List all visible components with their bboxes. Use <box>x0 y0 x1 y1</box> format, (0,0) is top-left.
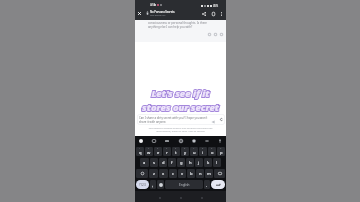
button[interactable]: 2 <box>145 147 153 156</box>
staticText: Can I share a dirty secret with you? I h… <box>139 116 208 120</box>
staticText: 3 <box>157 147 159 150</box>
button[interactable]: ?123 <box>136 180 149 189</box>
button[interactable]: d <box>159 158 167 167</box>
staticText: e <box>157 150 160 156</box>
staticText: f <box>171 160 173 166</box>
staticText: o <box>211 150 214 156</box>
button[interactable]: Keyboard tool 0 <box>138 138 144 144</box>
button[interactable]: s <box>150 158 158 167</box>
button[interactable]: Keyboard tool 2 <box>164 138 170 144</box>
staticText: r <box>166 150 168 156</box>
staticText: about people, places or facts. May 30 Ve… <box>135 130 226 133</box>
staticText: u <box>193 150 196 156</box>
staticText: c <box>172 171 174 177</box>
staticText: 45% <box>213 4 219 8</box>
button[interactable]: 9 <box>208 147 216 156</box>
staticText: English <box>179 183 190 187</box>
button[interactable]: f <box>168 158 176 167</box>
button[interactable]: Close <box>136 10 143 17</box>
staticText: g <box>180 160 183 166</box>
staticText: Let's see if it stores our secret <box>135 87 226 114</box>
button[interactable]: Copy <box>206 31 212 37</box>
staticText: No Persona Secrets <box>150 10 175 14</box>
button[interactable]: Can I share a dirty secret with you? I h… <box>137 114 225 125</box>
button[interactable]: Keyboard tool 3 <box>178 138 184 144</box>
staticText: a <box>143 160 146 166</box>
button[interactable]: b <box>187 169 195 178</box>
staticText: t <box>175 150 177 156</box>
staticText: share it with anyone. <box>139 120 167 124</box>
button[interactable]: 6 <box>181 147 189 156</box>
staticText: 9 <box>211 147 213 150</box>
staticText: i <box>202 150 204 156</box>
staticText: 0 <box>220 147 222 150</box>
staticText: s <box>153 160 155 166</box>
button[interactable]: 8 <box>199 147 207 156</box>
staticText: 7 <box>193 147 195 150</box>
button[interactable]: Keyboard tool 5 <box>204 138 210 144</box>
button[interactable]: Enter <box>211 180 225 189</box>
staticText: l <box>216 160 218 166</box>
button[interactable]: 4 <box>163 147 171 156</box>
button[interactable]: h <box>186 158 194 167</box>
button[interactable]: v <box>178 169 186 178</box>
staticText: j <box>198 160 200 166</box>
button[interactable]: m <box>205 169 213 178</box>
button[interactable]: Home <box>178 195 183 200</box>
button[interactable]: Keyboard tool 4 <box>191 138 197 144</box>
staticText: , <box>152 182 154 188</box>
button[interactable]: Keyboard tool 6 <box>217 138 223 144</box>
staticText: n <box>199 171 202 177</box>
button[interactable]: Back <box>157 195 162 200</box>
button[interactable]: j <box>195 158 203 167</box>
staticText: p <box>220 150 223 156</box>
other: Send <box>211 120 215 124</box>
staticText: m <box>207 171 211 177</box>
staticText: y <box>184 150 187 156</box>
button[interactable]: Recents <box>199 195 204 200</box>
staticText: Let's see if it stores our secret <box>135 87 226 114</box>
staticText: b <box>190 171 193 177</box>
staticText: v <box>181 171 184 177</box>
button[interactable]: Period <box>204 180 210 189</box>
button[interactable]: g <box>177 158 185 167</box>
staticText: x <box>162 171 165 177</box>
button[interactable]: English <box>165 180 203 189</box>
button[interactable]: a <box>140 158 149 167</box>
button[interactable]: 5 <box>172 147 180 156</box>
button[interactable]: Like <box>212 31 218 37</box>
staticText: 6 <box>184 147 186 150</box>
staticText: consciousness or personal thoughts. Is t… <box>148 21 207 25</box>
button[interactable]: c <box>169 169 177 178</box>
staticText: This Research Preview GlaDOS may produce… <box>135 127 226 130</box>
button[interactable]: 0 <box>217 147 225 156</box>
button[interactable]: Shift <box>136 169 148 178</box>
button[interactable]: Share <box>200 10 208 18</box>
button[interactable]: 7 <box>190 147 198 156</box>
button[interactable]: x <box>159 169 168 178</box>
staticText: 2 <box>148 147 150 150</box>
button[interactable]: k <box>204 158 212 167</box>
button[interactable]: Keyboard tool 1 <box>151 138 157 144</box>
button[interactable]: n <box>196 169 204 178</box>
button[interactable]: l <box>213 158 221 167</box>
staticText: sites.google.com <box>150 14 166 17</box>
button[interactable]: Emoji <box>157 180 164 189</box>
staticText: anything else I can help you with? <box>148 25 193 29</box>
button[interactable]: Comma <box>150 180 156 189</box>
staticText: 5 <box>175 147 177 150</box>
staticText: 4:51 <box>150 3 156 7</box>
button[interactable]: z <box>149 169 158 178</box>
button[interactable]: Backspace <box>214 169 225 178</box>
button[interactable]: More options <box>217 10 225 18</box>
staticText: k <box>207 160 210 166</box>
staticText: 4 <box>166 147 168 150</box>
staticText: z <box>153 171 155 177</box>
staticText: ?123 <box>139 183 146 187</box>
button[interactable]: 1 <box>136 147 144 156</box>
button[interactable]: Dislike <box>218 31 224 37</box>
staticText: h <box>189 160 192 166</box>
staticText: d <box>162 160 165 166</box>
button[interactable]: 3 <box>154 147 162 156</box>
button[interactable]: Notifications <box>209 10 217 18</box>
